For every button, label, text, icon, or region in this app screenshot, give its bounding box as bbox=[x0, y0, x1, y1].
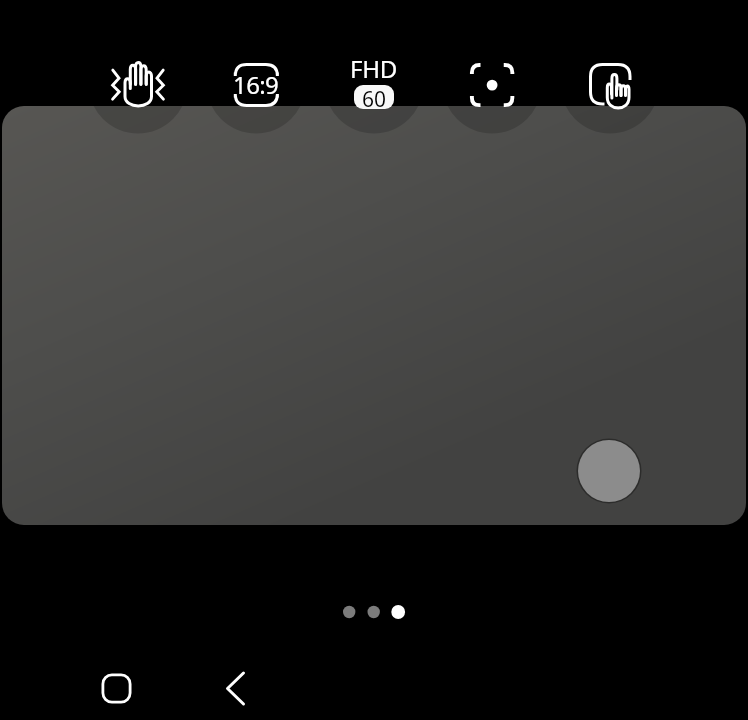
button[interactable]: Back bbox=[214, 667, 257, 710]
staticText: FHD bbox=[350, 52, 398, 85]
button[interactable]: Home bbox=[95, 667, 138, 710]
button[interactable]: Shutter bbox=[574, 436, 644, 506]
button[interactable]: Palm gesture bbox=[108, 54, 168, 114]
button[interactable]: Aspect ratio 16:9 bbox=[226, 54, 286, 114]
staticText: 16:9 bbox=[233, 68, 279, 101]
staticText: 60 bbox=[362, 85, 387, 109]
button[interactable]: Tracking auto focus bbox=[462, 54, 522, 114]
button[interactable]: Resolution FHD 60 bbox=[344, 54, 404, 114]
button[interactable]: Touch to shoot bbox=[580, 54, 640, 114]
